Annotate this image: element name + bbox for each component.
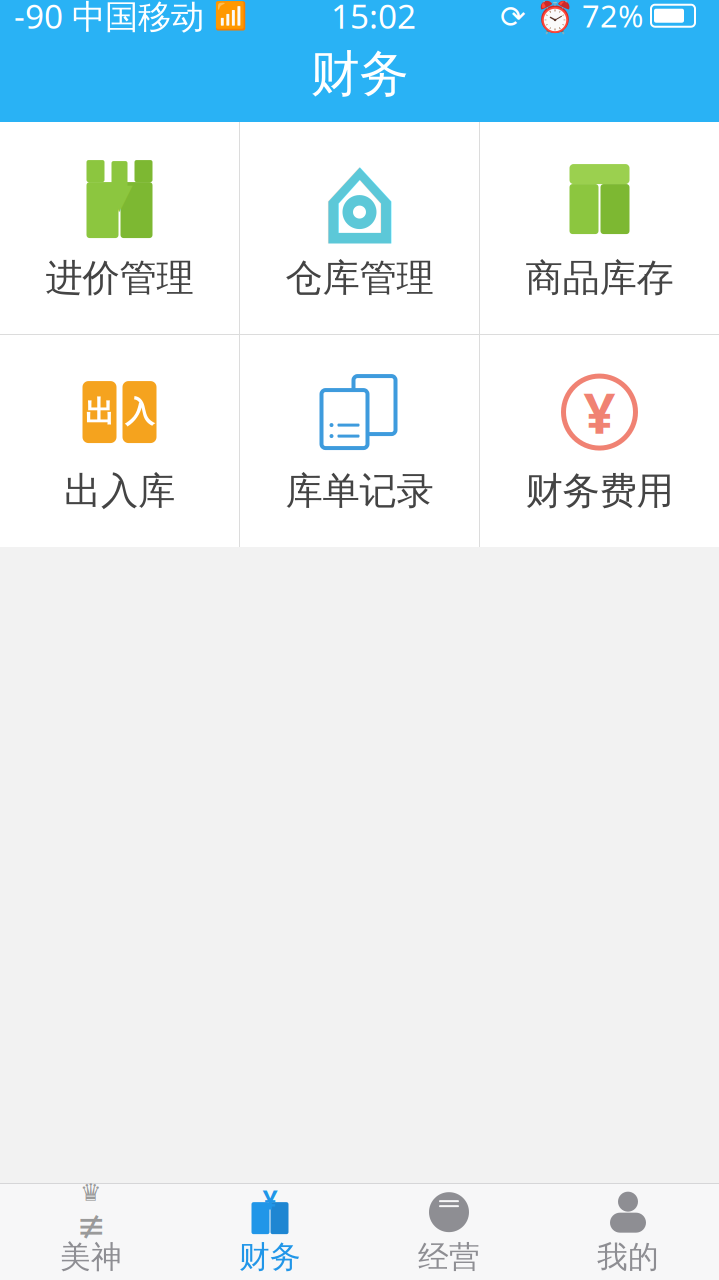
- button[interactable]: ♛: [1, 1183, 180, 1280]
- staticText: 财务费用: [525, 468, 673, 514]
- staticText: 经营: [418, 1238, 480, 1276]
- button[interactable]: 我的: [538, 1183, 717, 1280]
- staticText: 入: [125, 394, 154, 430]
- button[interactable]: 出: [0, 335, 239, 547]
- button[interactable]: 商品库存: [480, 122, 719, 334]
- button[interactable]: ⌂: [240, 122, 479, 334]
- staticText: ≢: [76, 1206, 105, 1245]
- staticText: ♛: [80, 1179, 102, 1206]
- staticText: 财务: [239, 1238, 301, 1276]
- staticText: ⟳ ⏰ 72%: [500, 0, 643, 36]
- staticText: 📶: [214, 0, 247, 31]
- staticText: 商品库存: [525, 255, 673, 301]
- staticText: 库单记录: [285, 468, 433, 514]
- staticText: ¥: [583, 375, 615, 449]
- staticText: ▼: [106, 176, 133, 216]
- staticText: 15:02: [331, 0, 416, 38]
- staticText: -90 中国移动: [14, 0, 214, 38]
- staticText: 财务: [310, 44, 408, 104]
- staticText: 进价管理: [45, 255, 193, 301]
- button[interactable]: ¥: [180, 1183, 359, 1280]
- staticText: 仓库管理: [285, 255, 433, 301]
- staticText: 我的: [597, 1238, 659, 1276]
- button[interactable]: ¥: [480, 335, 719, 547]
- staticText: 美神: [60, 1238, 122, 1276]
- staticText: ⌂: [319, 126, 400, 272]
- staticText: 出入库: [64, 468, 175, 514]
- staticText: ¥: [262, 1181, 277, 1217]
- button[interactable]: 经营: [359, 1183, 538, 1280]
- staticText: 出: [85, 394, 114, 430]
- button[interactable]: ▼: [0, 122, 239, 334]
- button[interactable]: 库单记录: [240, 335, 479, 547]
